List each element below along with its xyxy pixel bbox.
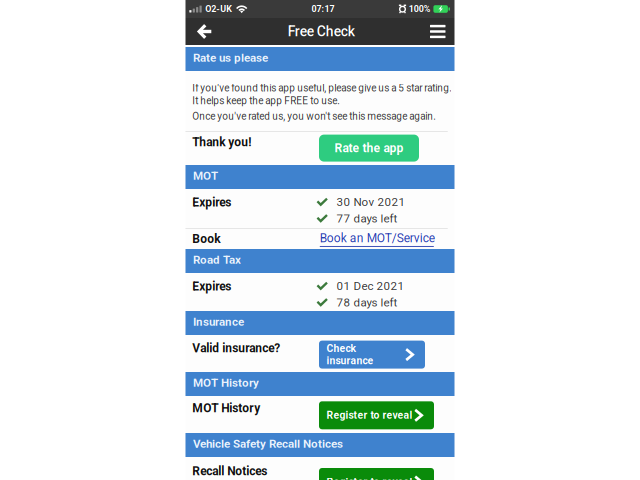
staticText: 30 Nov 2021 [336,195,405,209]
staticText: Free Check [288,23,355,40]
button[interactable]: Menu [420,18,454,45]
button[interactable]: Register to reveal [319,468,434,480]
staticText: Valid insurance? [192,341,280,355]
staticText: Rate us please [193,51,268,65]
staticText: 78 days left [336,296,397,309]
staticText: 07:17 [311,4,334,14]
staticText: MOT History [193,376,259,390]
staticText: Road Tax [193,253,241,267]
button[interactable]: Back [185,18,223,45]
staticText: MOT History [192,401,260,415]
staticText: MOT [193,169,218,183]
staticText: 100% [409,4,431,14]
staticText: Register to reveal [326,476,412,480]
staticText: Book an MOT/Service [320,231,435,245]
staticText: Expires [192,195,231,209]
staticText: If you've found this app useful, please … [192,82,452,94]
staticText: Register to reveal [326,409,412,421]
button[interactable]: Rate the app [319,135,419,162]
staticText: It helps keep the app FREE to use. [192,95,340,107]
staticText: 77 days left [336,212,397,225]
staticText: Rate the app [334,141,403,155]
button[interactable]: Register to reveal [319,401,434,429]
staticText: Vehicle Safety Recall Notices [193,437,343,451]
staticText: Check insurance [326,342,373,367]
staticText: Thank you! [192,135,251,149]
staticText: Expires [192,279,231,293]
staticText: Book [192,232,220,246]
staticText: 01 Dec 2021 [336,279,404,293]
staticText: Once you've rated us, you won't see this… [192,110,436,122]
button[interactable]: Check insurance [319,341,425,369]
button[interactable]: Book an MOT/Service [320,231,438,247]
staticText: Recall Notices [192,464,267,478]
staticText: Insurance [193,315,244,329]
staticText: O2-UK [205,4,232,14]
